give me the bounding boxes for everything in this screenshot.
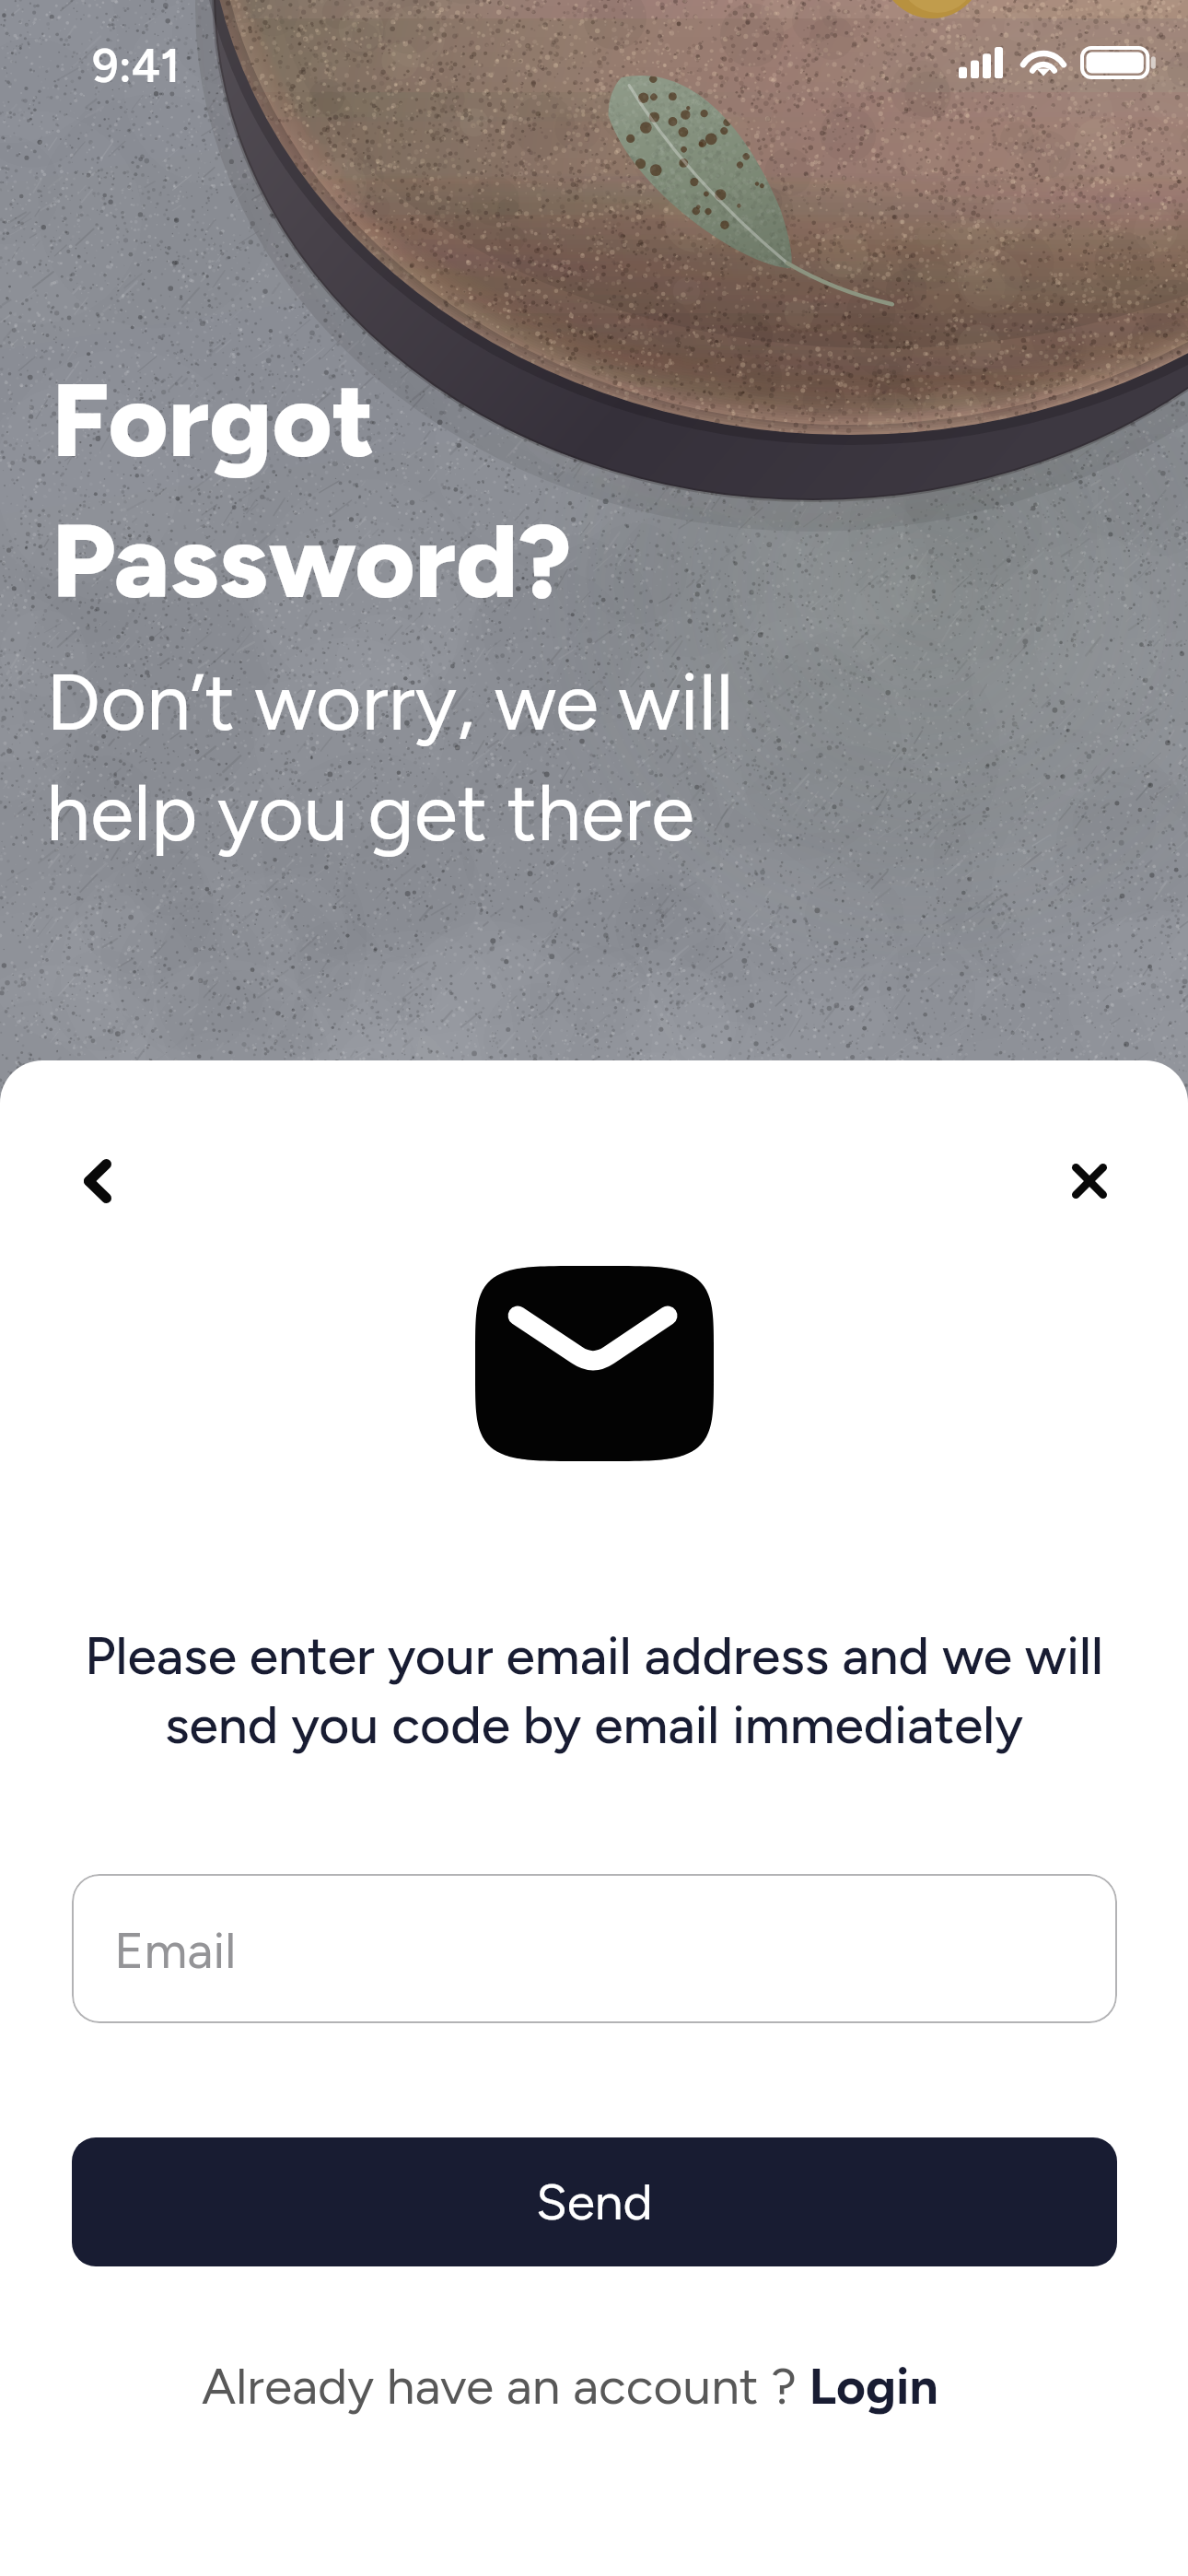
staticText: Don’t worry, we will help you get there <box>46 654 734 860</box>
button[interactable]: Email <box>72 1874 1117 2023</box>
staticText: Forgot Password? <box>52 358 572 623</box>
button[interactable]: Close <box>1046 1138 1133 1224</box>
staticText: 9:41 <box>92 38 181 93</box>
staticText: Already have an account ? Login <box>202 2356 938 2417</box>
button[interactable]: Send <box>72 2137 1117 2266</box>
button[interactable]: Already have an account ? Login <box>183 2345 957 2428</box>
staticText: Send <box>536 2172 653 2232</box>
staticText: Email <box>114 1920 237 1981</box>
button[interactable]: Back <box>54 1138 141 1224</box>
staticText: Please enter your email address and we w… <box>72 1624 1116 1757</box>
